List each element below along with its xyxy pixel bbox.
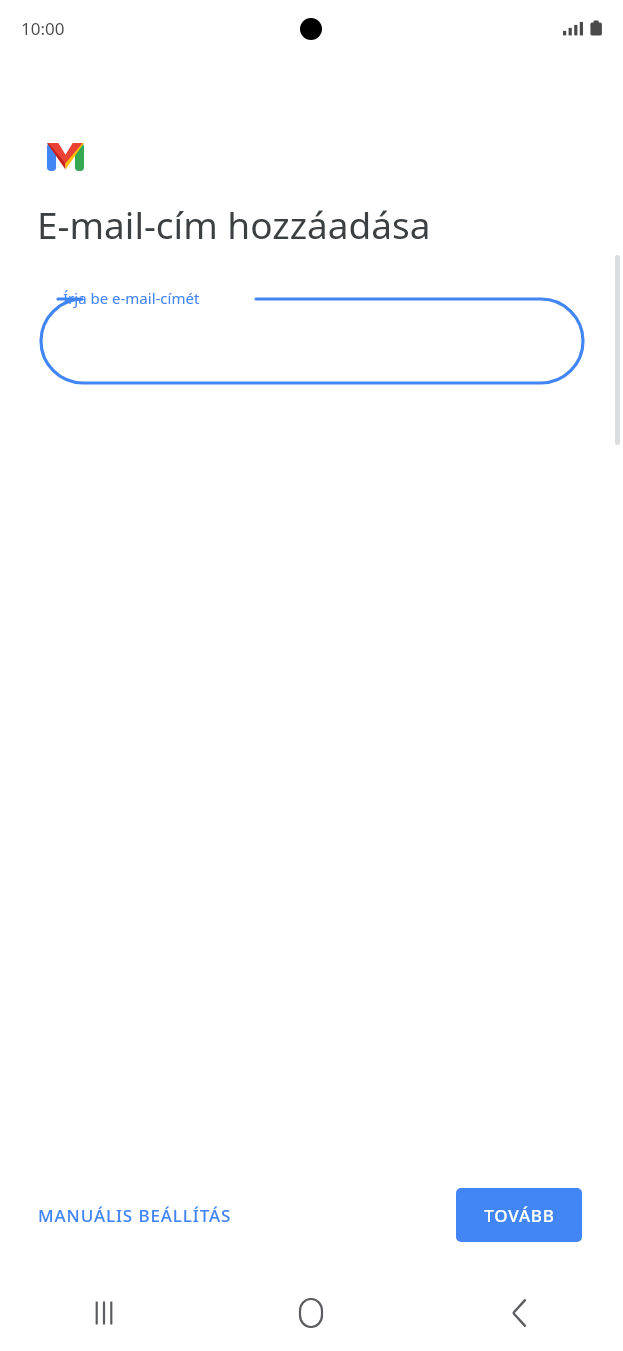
button[interactable]: Back (415, 1275, 623, 1351)
button[interactable]: Írja be e-mail-címét (0, 277, 623, 377)
button[interactable]: MANUÁLIS BEÁLLÍTÁS (26, 1190, 244, 1241)
staticText: TOVÁBB (484, 1204, 555, 1227)
button[interactable]: Home (207, 1275, 415, 1351)
staticText: E-mail-cím hozzáadása (37, 199, 431, 249)
staticText: Írja be e-mail-címét (63, 288, 200, 308)
button[interactable]: TOVÁBB (456, 1188, 582, 1242)
staticText: 10:00 (21, 17, 65, 40)
button[interactable]: Recent apps (0, 1275, 207, 1351)
staticText: MANUÁLIS BEÁLLÍTÁS (38, 1204, 232, 1227)
